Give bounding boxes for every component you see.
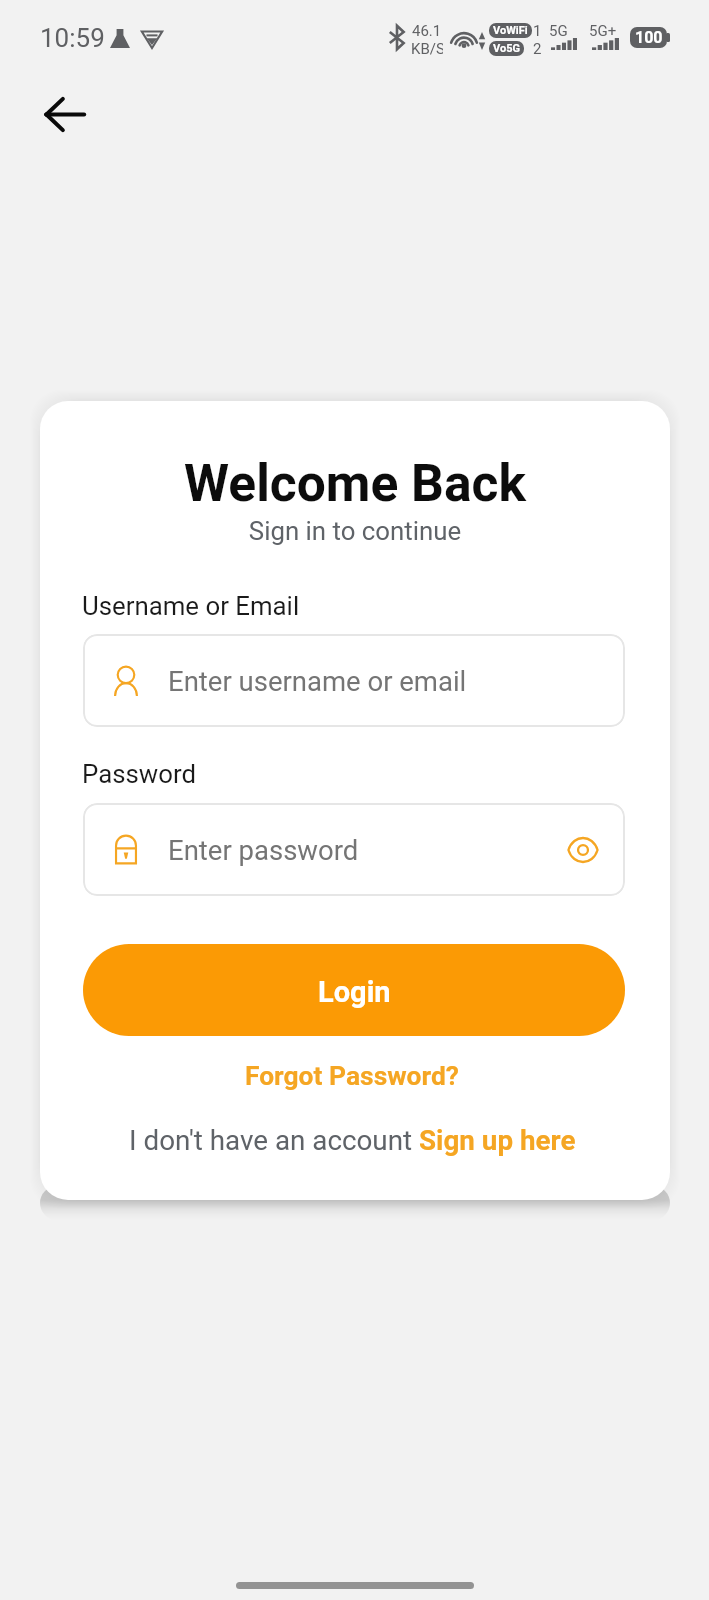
button[interactable]: Back <box>36 86 93 143</box>
staticText: 2 <box>533 40 542 58</box>
button[interactable]: Enter password <box>83 803 625 896</box>
button[interactable]: Enter username or email <box>83 634 625 727</box>
staticText: Forgot Password? <box>245 1061 459 1092</box>
staticText: VoWiFi <box>493 24 528 37</box>
staticText: Welcome Back <box>40 453 670 513</box>
staticText: Enter password <box>168 834 359 866</box>
staticText: 5G <box>549 22 568 40</box>
staticText: 100 <box>635 28 663 47</box>
staticText: 1 <box>533 22 542 40</box>
staticText: I don't have an account Sign up here <box>129 1124 576 1157</box>
staticText: 5G+ <box>589 22 617 40</box>
staticText: Password <box>82 759 196 789</box>
staticText: Sign in to continue <box>40 516 670 546</box>
button[interactable]: Login <box>83 944 625 1036</box>
staticText: Username or Email <box>82 591 300 621</box>
staticText: Vo5G <box>493 42 520 55</box>
staticText: Login <box>318 975 391 1009</box>
button[interactable]: I don't have an account Sign up here <box>40 1117 670 1163</box>
button[interactable]: Show password <box>563 830 603 870</box>
staticText: 10:59 <box>40 23 105 53</box>
staticText: KB/S <box>411 40 443 58</box>
button[interactable]: Forgot Password? <box>40 1054 670 1098</box>
staticText: 46.1 <box>412 22 442 40</box>
staticText: Enter username or email <box>168 665 467 697</box>
